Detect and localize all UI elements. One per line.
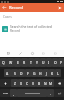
button[interactable]: V [30,79,36,87]
staticText: Y [36,60,38,65]
staticText: L [57,71,59,76]
button[interactable]: Sticker [29,50,36,57]
staticText: V [32,81,35,86]
staticText: T [30,60,32,65]
staticText: Search the text of collected records [10,24,62,28]
button[interactable]: A [4,69,11,77]
staticText: R [23,60,26,65]
button[interactable]: O [52,58,58,67]
button[interactable] [0,79,11,87]
button[interactable]: W [7,58,14,67]
button[interactable]: Q [0,58,7,67]
staticText: U [42,60,45,65]
button[interactable]: X [18,79,24,87]
button[interactable]: , [10,89,17,97]
button[interactable]: S [11,69,18,77]
staticText: . [50,91,51,96]
button[interactable]: Send [55,3,64,12]
staticText: N [44,81,47,86]
button[interactable]: Record [9,3,55,12]
button[interactable]: ?123 [0,89,10,97]
button[interactable] [54,79,64,87]
staticText: Q [2,60,5,65]
button[interactable]: K [49,69,55,77]
staticText: A [6,71,9,76]
staticText: Record [9,5,23,11]
button[interactable]: E [14,58,21,67]
button[interactable]: Settings [40,50,47,57]
button[interactable]: T [28,58,34,67]
button[interactable]: J [43,69,49,77]
button[interactable]: M [48,79,54,87]
staticText: C [26,81,29,86]
button[interactable]: I [46,58,52,67]
button[interactable]: U [40,58,46,67]
button[interactable]: Draw [17,50,24,57]
staticText: ?123 [3,92,8,95]
button[interactable]: H [37,69,43,77]
staticText: S [14,71,16,76]
staticText: Cases [3,15,12,19]
staticText: Record [10,29,20,33]
button[interactable]: N [42,79,48,87]
button[interactable]: Clipboard [5,50,12,57]
button[interactable]: . [47,89,54,97]
button[interactable] [54,89,64,97]
button[interactable] [17,89,47,97]
staticText: O [54,60,57,65]
staticText: P [60,60,63,65]
button[interactable]: Z [11,79,18,87]
staticText: J [46,71,47,76]
staticText: Z [14,81,16,86]
button[interactable]: B [36,79,42,87]
button[interactable]: More [52,50,59,57]
staticText: G [33,71,36,76]
staticText: K [51,71,54,76]
staticText: W [9,60,13,65]
button[interactable]: R [21,58,28,67]
button[interactable]: F [25,69,31,77]
button[interactable]: P [58,58,64,67]
staticText: M [49,81,53,86]
staticText: E [17,60,19,65]
button[interactable]: L [55,69,61,77]
button[interactable]: C [24,79,30,87]
staticText: D [20,71,23,76]
staticText: H [39,71,42,76]
button[interactable]: Y [34,58,40,67]
staticText: F [27,71,29,76]
staticText: , [13,91,14,96]
staticText: B [38,81,41,86]
staticText: I [48,60,50,65]
button[interactable]: Back [0,3,9,12]
button[interactable]: G [31,69,37,77]
button[interactable]: Search the text of collected records [0,23,64,34]
button[interactable]: D [18,69,25,77]
staticText: X [20,81,22,86]
